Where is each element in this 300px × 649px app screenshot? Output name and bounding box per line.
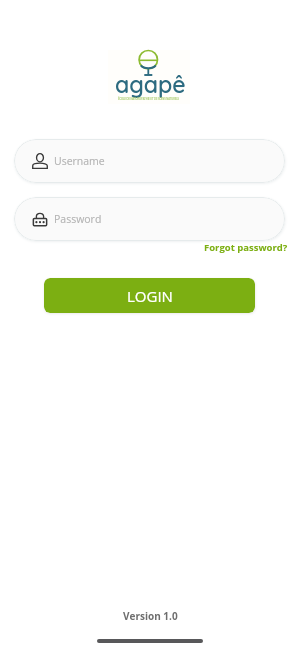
staticText: Forgot password?: [204, 241, 288, 254]
button[interactable]: Password: [14, 197, 285, 241]
staticText: LOGIN: [127, 286, 173, 306]
button[interactable]: Forgot password?: [199, 238, 293, 257]
other: Username: [32, 153, 48, 169]
staticText: ÉCOLE DE NATUROPATHIE ET DE SOINS NATURE…: [118, 97, 179, 101]
staticText: Password: [54, 212, 102, 226]
button[interactable]: LOGIN: [44, 278, 255, 313]
other: agape logo: [108, 50, 189, 103]
staticText: Version 1.0: [123, 609, 178, 623]
other: Password: [32, 211, 48, 227]
staticText: Username: [54, 154, 105, 168]
button[interactable]: Username: [14, 139, 285, 183]
staticText: agapê: [115, 70, 186, 99]
